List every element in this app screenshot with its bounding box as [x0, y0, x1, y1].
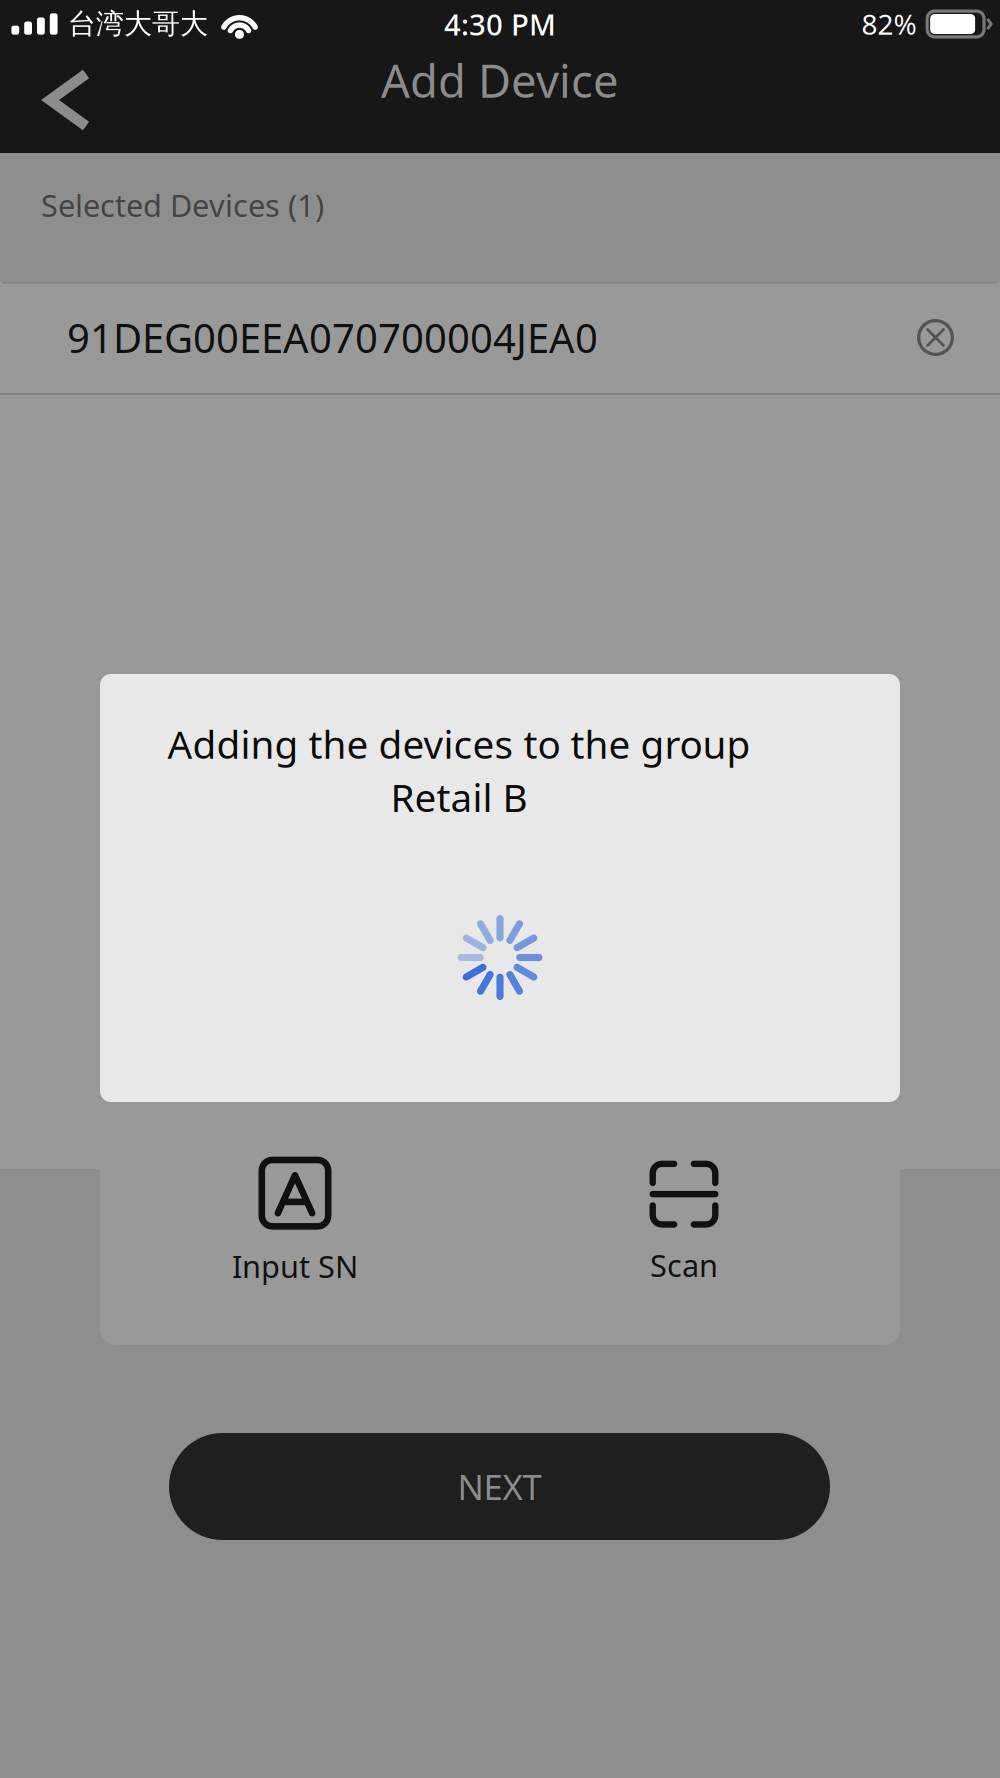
button[interactable]: Back — [0, 50, 110, 150]
staticText: 82% — [862, 5, 917, 43]
staticText: NEXT — [457, 1463, 541, 1509]
staticText: 台湾大哥大 — [68, 7, 208, 41]
staticText: Input SN — [232, 1246, 358, 1286]
button[interactable]: Remove device — [899, 301, 972, 374]
staticText: 91DEG00EEA070700004JEA0 — [67, 311, 598, 364]
button[interactable]: NEXT — [169, 1433, 830, 1540]
staticText: 4:30 PM — [444, 4, 556, 43]
button[interactable]: Input SN — [130, 1156, 460, 1287]
staticText: Selected Devices (1) — [41, 185, 324, 225]
staticText: Add Device — [381, 50, 619, 110]
staticText: Retail B — [390, 771, 527, 823]
staticText: Scan — [650, 1245, 718, 1285]
button[interactable]: Scan — [519, 1156, 849, 1287]
staticText: Adding the devices to the group — [167, 718, 750, 769]
